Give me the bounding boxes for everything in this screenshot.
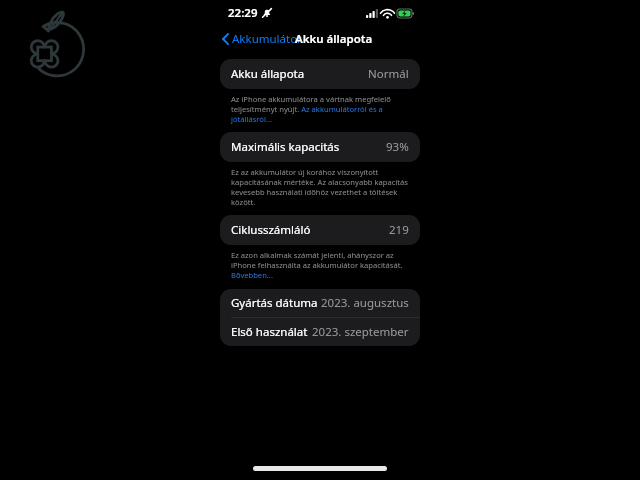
staticText: Gyártás dátuma: [231, 295, 318, 311]
staticText: 93%: [386, 139, 409, 155]
staticText: Az iPhone akkumulátora a vártnak megfele…: [231, 94, 414, 124]
button[interactable]: Gyártás dátuma: [220, 289, 420, 317]
staticText: 22:29: [228, 5, 258, 21]
button[interactable]: Akkumulátor: [208, 28, 308, 50]
staticText: Akkumulátor: [232, 31, 302, 47]
other: Apple command logo: [26, 6, 88, 78]
staticText: Normál: [368, 66, 409, 82]
staticText: 219: [389, 222, 409, 238]
staticText: Ez azon alkalmak számát jelenti, ahánysz…: [231, 250, 414, 280]
staticText: Akku állapota: [231, 66, 305, 82]
button[interactable]: Ciklusszámláló: [220, 215, 420, 245]
staticText: Akku állapota: [295, 31, 373, 47]
button[interactable]: Akku állapota: [220, 59, 420, 89]
button[interactable]: Maximális kapacitás: [220, 132, 420, 162]
staticText: Első használat: [231, 324, 308, 340]
staticText: Maximális kapacitás: [231, 139, 340, 155]
staticText: Ciklusszámláló: [231, 222, 311, 238]
staticText: Ez az akkumulátor új korához viszonyítot…: [231, 167, 414, 207]
staticText: 2023. szeptember: [312, 324, 409, 340]
button[interactable]: Első használat: [220, 318, 420, 346]
staticText: 2023. augusztus: [321, 295, 409, 311]
